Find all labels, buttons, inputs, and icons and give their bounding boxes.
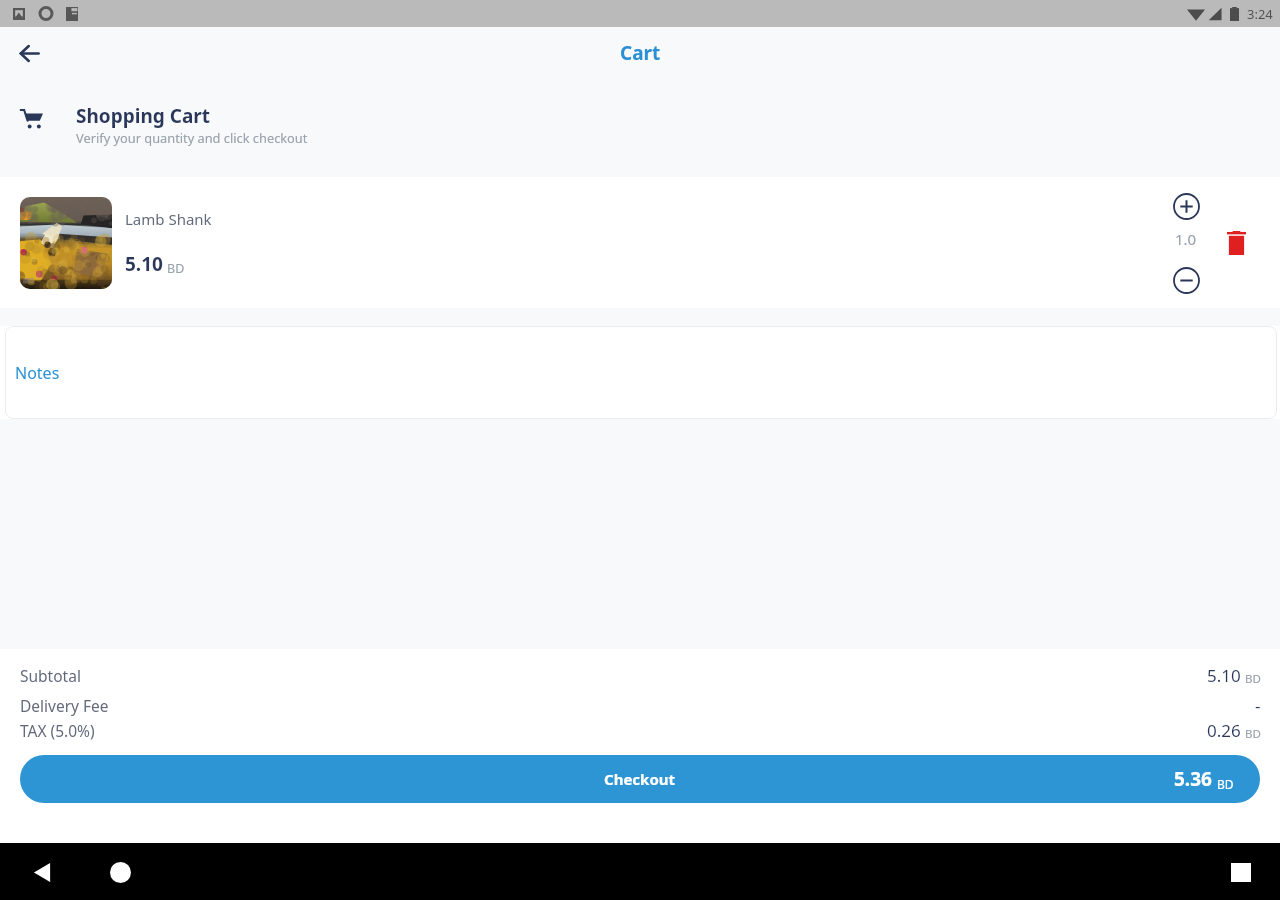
staticText: 5.10 xyxy=(125,251,163,277)
staticText: Verify your quantity and click checkout xyxy=(76,129,308,146)
staticText: BD xyxy=(1245,671,1261,687)
staticText: - xyxy=(1255,694,1261,717)
staticText: 1.0 xyxy=(1175,229,1197,249)
button[interactable]: Back xyxy=(24,854,60,890)
staticText: Checkout xyxy=(604,769,676,789)
staticText: Cart xyxy=(620,40,661,66)
button[interactable]: Home xyxy=(102,854,138,890)
button[interactable]: Delete item xyxy=(1216,223,1256,263)
staticText: BD xyxy=(1217,776,1234,792)
staticText: BD xyxy=(167,260,185,277)
staticText: Notes xyxy=(15,362,60,384)
staticText: Subtotal xyxy=(20,665,81,686)
staticText: BD xyxy=(1245,726,1261,742)
staticText: 5.36 xyxy=(1174,766,1212,792)
button[interactable]: Checkout xyxy=(20,755,1260,803)
button[interactable]: Notes xyxy=(5,326,1277,419)
staticText: Lamb Shank xyxy=(125,209,212,229)
button[interactable]: Decrease quantity xyxy=(1168,262,1204,298)
staticText: Delivery Fee xyxy=(20,695,109,716)
staticText: Shopping Cart xyxy=(76,103,211,129)
button[interactable]: Back xyxy=(8,32,50,74)
button[interactable]: Increase quantity xyxy=(1168,188,1204,224)
staticText: 5.10 xyxy=(1207,664,1241,687)
button[interactable]: Recent apps xyxy=(1223,854,1259,890)
staticText: 0.26 xyxy=(1207,719,1241,742)
staticText: 3:24 xyxy=(1247,5,1273,23)
staticText: TAX (5.0%) xyxy=(20,720,95,741)
